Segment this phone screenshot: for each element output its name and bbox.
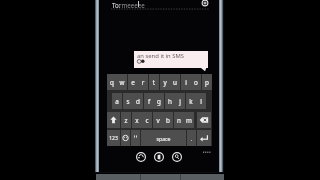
staticText: o xyxy=(191,78,201,94)
staticText: an send it in SMS xyxy=(137,52,185,60)
staticText: s xyxy=(123,97,133,113)
staticText: c xyxy=(142,116,152,132)
button[interactable]: Search xyxy=(171,151,183,163)
button[interactable]: e xyxy=(128,74,138,90)
button[interactable]: l xyxy=(196,93,206,109)
button[interactable]: s xyxy=(123,93,133,109)
staticText: t xyxy=(149,78,159,94)
button[interactable]: Home xyxy=(153,151,165,163)
button[interactable]: g xyxy=(154,93,164,109)
button[interactable]: w xyxy=(117,74,127,90)
staticText: a xyxy=(112,97,122,113)
button[interactable]: . xyxy=(187,130,196,146)
staticText: q xyxy=(107,78,117,94)
staticText: i xyxy=(181,78,191,94)
button[interactable]: x xyxy=(132,112,142,128)
staticText: 123 xyxy=(107,135,120,151)
staticText: x xyxy=(132,116,142,132)
button[interactable]: f xyxy=(144,93,154,109)
staticText: e xyxy=(128,78,138,94)
staticText: f xyxy=(144,97,154,113)
staticText: . xyxy=(187,135,196,151)
staticText: space xyxy=(141,135,186,151)
staticText: k xyxy=(186,97,196,113)
button[interactable]: emoji xyxy=(121,130,130,146)
staticText: To: xyxy=(112,1,121,9)
button[interactable]: c xyxy=(142,112,152,128)
staticText: rmeeeee xyxy=(119,1,145,9)
button[interactable]: o xyxy=(191,74,201,90)
staticText: j xyxy=(175,97,185,113)
staticText: g xyxy=(154,97,164,113)
button[interactable]: m xyxy=(184,112,194,128)
staticText: p xyxy=(202,78,212,94)
button[interactable]: k xyxy=(186,93,196,109)
button[interactable]: p xyxy=(202,74,212,90)
staticText: r xyxy=(138,78,148,94)
button[interactable]: enter xyxy=(197,130,211,146)
button[interactable]: r xyxy=(138,74,148,90)
staticText: y xyxy=(160,78,170,94)
button[interactable]: j xyxy=(175,93,185,109)
staticText: d xyxy=(133,97,143,113)
button[interactable]: n xyxy=(174,112,184,128)
staticText: v xyxy=(153,116,163,132)
button[interactable]: y xyxy=(160,74,170,90)
button[interactable]: a xyxy=(112,93,122,109)
button[interactable]: v xyxy=(153,112,163,128)
button[interactable]: 123 xyxy=(107,130,120,146)
button[interactable]: b xyxy=(163,112,173,128)
staticText: m xyxy=(184,116,194,132)
button[interactable]: i xyxy=(181,74,191,90)
button[interactable]: z xyxy=(121,112,131,128)
button[interactable]: h xyxy=(165,93,175,109)
button[interactable]: Add contact xyxy=(200,0,210,8)
button[interactable]: t xyxy=(149,74,159,90)
staticText: z xyxy=(121,116,131,132)
button[interactable]: quote xyxy=(131,130,140,146)
button[interactable]: shift xyxy=(107,112,120,128)
button[interactable]: q xyxy=(107,74,117,90)
button[interactable]: Back xyxy=(135,151,147,163)
staticText: n xyxy=(174,116,184,132)
button[interactable]: u xyxy=(170,74,180,90)
staticText: b xyxy=(163,116,173,132)
button[interactable]: space xyxy=(141,130,186,146)
button[interactable]: d xyxy=(133,93,143,109)
staticText: w xyxy=(117,78,127,94)
staticText: u xyxy=(170,78,180,94)
button[interactable]: back xyxy=(197,112,211,128)
staticText: l xyxy=(196,97,206,113)
staticText: h xyxy=(165,97,175,113)
